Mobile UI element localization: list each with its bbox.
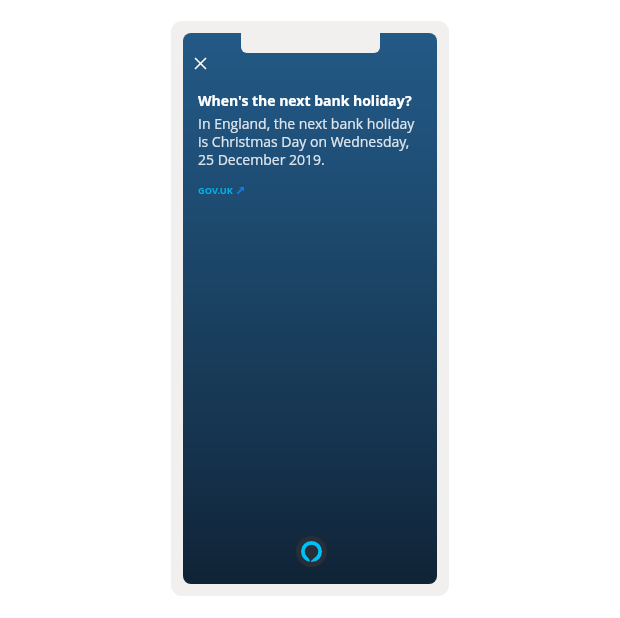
- button[interactable]: Cortana assistant: [296, 536, 327, 567]
- button[interactable]: GOV.UK: [198, 184, 244, 197]
- staticText: In England, the next bank holiday is Chr…: [198, 114, 415, 169]
- staticText: When's the next bank holiday?: [198, 91, 412, 110]
- button[interactable]: Close: [189, 52, 211, 74]
- staticText: GOV.UK: [198, 184, 233, 197]
